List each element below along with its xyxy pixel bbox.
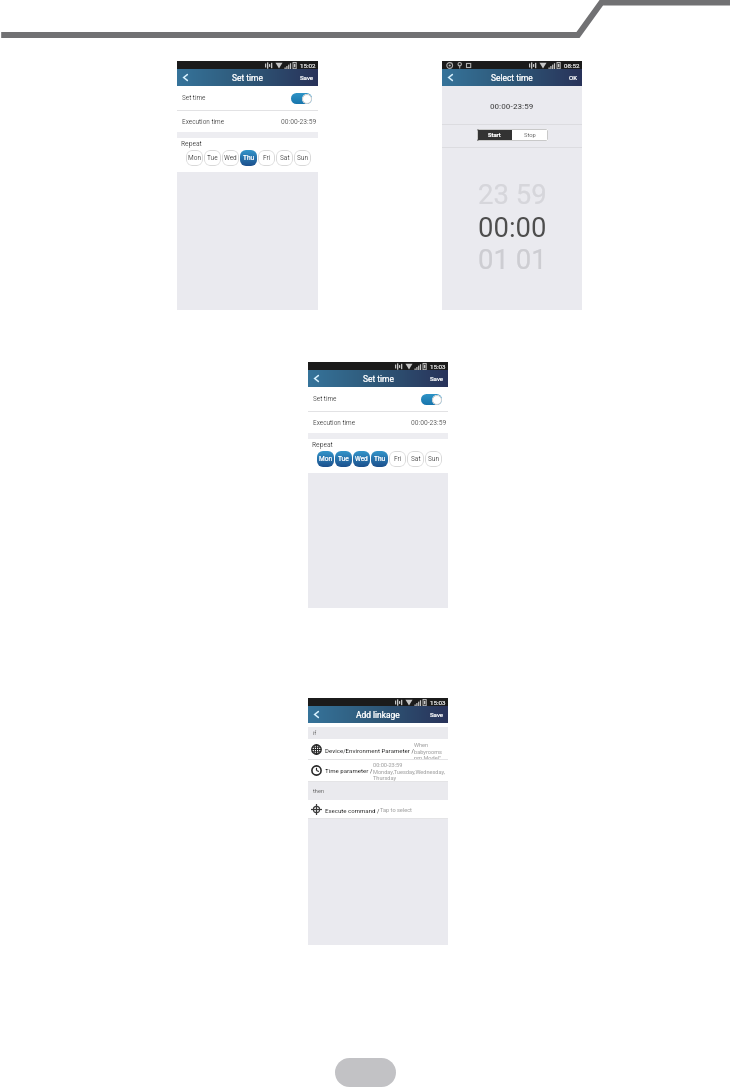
- staticText: Wed: [224, 154, 237, 162]
- staticText: Execution time: [313, 419, 356, 427]
- staticText: then: [313, 788, 324, 795]
- button[interactable]: Set time on: [291, 93, 312, 104]
- button[interactable]: Save: [430, 370, 444, 387]
- button[interactable]: Fri: [389, 451, 406, 467]
- staticText: 00:00-23:59: [411, 419, 447, 427]
- button[interactable]: Time parameter /: [308, 760, 448, 782]
- staticText: Mon: [188, 154, 201, 162]
- staticText: 15:02: [300, 62, 316, 69]
- staticText: 00:00-23:59: [281, 118, 317, 126]
- staticText: 15:03: [430, 363, 446, 370]
- staticText: Save: [430, 375, 444, 382]
- button[interactable]: Set time: [308, 387, 448, 411]
- button[interactable]: Back: [308, 706, 325, 723]
- button[interactable]: Set time on: [421, 394, 442, 405]
- staticText: Sat: [280, 154, 290, 162]
- button[interactable]: Wed: [222, 150, 239, 166]
- staticText: Thu: [243, 154, 255, 162]
- staticText: Sun: [428, 455, 440, 463]
- staticText: 15:03: [430, 699, 446, 706]
- staticText: Fri: [394, 455, 402, 463]
- staticText: Thu: [374, 455, 386, 463]
- button[interactable]: Sun: [425, 451, 442, 467]
- button[interactable]: Back: [442, 69, 459, 86]
- button[interactable]: Execution time: [177, 111, 318, 132]
- staticText: Repeat: [181, 140, 202, 148]
- staticText: Device/Environment Parameter /: [325, 747, 414, 754]
- button[interactable]: Thu: [371, 451, 388, 467]
- button[interactable]: Tue: [335, 451, 352, 467]
- staticText: Start: [488, 132, 501, 139]
- staticText: 00:00-23:59: [490, 102, 534, 111]
- button[interactable]: OK: [569, 69, 578, 86]
- button[interactable]: Sat: [276, 150, 293, 166]
- button[interactable]: Execute command /: [308, 800, 448, 819]
- staticText: 01 01: [478, 243, 547, 275]
- staticText: 23 59: [478, 178, 547, 210]
- staticText: Fri: [263, 154, 271, 162]
- button[interactable]: Mon: [186, 150, 203, 166]
- staticText: Execution time: [182, 118, 225, 126]
- staticText: Execute command /: [325, 807, 380, 814]
- button[interactable]: Thu: [240, 150, 257, 166]
- staticText: 00:00-23:59 Monday,Tuesday,Wednesday, Th…: [373, 762, 448, 781]
- staticText: Repeat: [312, 441, 333, 449]
- staticText: Set time: [232, 73, 263, 83]
- button[interactable]: Device/Environment Parameter /: [308, 739, 448, 760]
- staticText: Set time: [182, 94, 206, 102]
- staticText: Tap to select: [380, 807, 448, 814]
- button[interactable]: Back: [177, 69, 194, 86]
- staticText: Stop: [524, 132, 536, 139]
- staticText: OK: [569, 74, 578, 81]
- button[interactable]: Fri: [258, 150, 275, 166]
- staticText: 08:52: [564, 62, 580, 69]
- button[interactable]: Execution time: [308, 412, 448, 433]
- button[interactable]: Tue: [204, 150, 221, 166]
- staticText: 00:00: [478, 211, 547, 243]
- staticText: Set time: [363, 374, 394, 384]
- button[interactable]: Save: [300, 69, 314, 86]
- staticText: Tue: [338, 455, 349, 463]
- button[interactable]: Mon: [317, 451, 334, 467]
- staticText: Tue: [207, 154, 218, 162]
- button[interactable]: Set time: [177, 86, 318, 110]
- button[interactable]: Back: [308, 370, 325, 387]
- staticText: Mon: [319, 455, 332, 463]
- staticText: Save: [430, 711, 444, 718]
- button[interactable]: Stop: [512, 129, 548, 141]
- button[interactable]: Sat: [407, 451, 424, 467]
- staticText: Add linkage: [356, 710, 400, 720]
- staticText: Sat: [411, 455, 421, 463]
- staticText: Set time: [313, 395, 337, 403]
- staticText: When babyrooms pm Model": [414, 742, 448, 761]
- button[interactable]: Sun: [294, 150, 311, 166]
- staticText: Wed: [355, 455, 368, 463]
- staticText: Save: [300, 74, 314, 81]
- staticText: if: [313, 730, 317, 737]
- staticText: Select time: [491, 73, 533, 83]
- button[interactable]: Start: [477, 129, 512, 141]
- staticText: Sun: [297, 154, 309, 162]
- button[interactable]: Wed: [353, 451, 370, 467]
- button[interactable]: Save: [430, 706, 444, 723]
- staticText: Time parameter /: [325, 767, 373, 774]
